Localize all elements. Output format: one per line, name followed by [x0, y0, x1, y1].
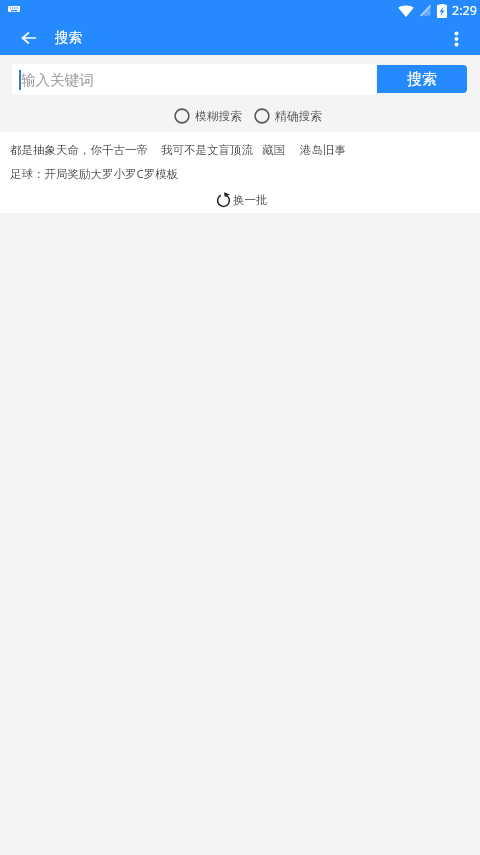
staticText: 搜索 [407, 70, 437, 89]
button[interactable]: 模糊搜索 [174, 108, 243, 124]
staticText: 港岛旧事 [300, 143, 346, 157]
button[interactable]: 都是抽象天命，你千古一帝 [10, 141, 148, 159]
staticText: 精确搜索 [275, 109, 323, 124]
button[interactable]: 我可不是文盲顶流 [161, 141, 253, 159]
staticText: 我可不是文盲顶流 [161, 143, 253, 157]
button[interactable]: 足球：开局奖励大罗小罗C罗模板 [10, 164, 179, 184]
staticText: 模糊搜索 [195, 109, 243, 124]
staticText: 换一批 [233, 193, 268, 207]
button[interactable]: 藏国 [262, 141, 285, 159]
button[interactable]: 港岛旧事 [300, 141, 346, 159]
staticText: 足球：开局奖励大罗小罗C罗模板 [10, 166, 179, 182]
staticText: 搜索 [55, 29, 82, 46]
staticText: 输入关键词 [21, 71, 94, 89]
button[interactable]: 精确搜索 [254, 108, 323, 124]
button[interactable]: 换一批 [216, 192, 268, 207]
staticText: 都是抽象天命，你千古一帝 [10, 143, 148, 157]
button[interactable]: 输入关键词 [12, 64, 376, 95]
button[interactable]: 搜索 [377, 65, 467, 93]
button[interactable]: More options [438, 23, 474, 54]
staticText: 藏国 [262, 143, 285, 157]
button[interactable]: Back [11, 22, 47, 53]
staticText: 2:29 [452, 2, 477, 19]
